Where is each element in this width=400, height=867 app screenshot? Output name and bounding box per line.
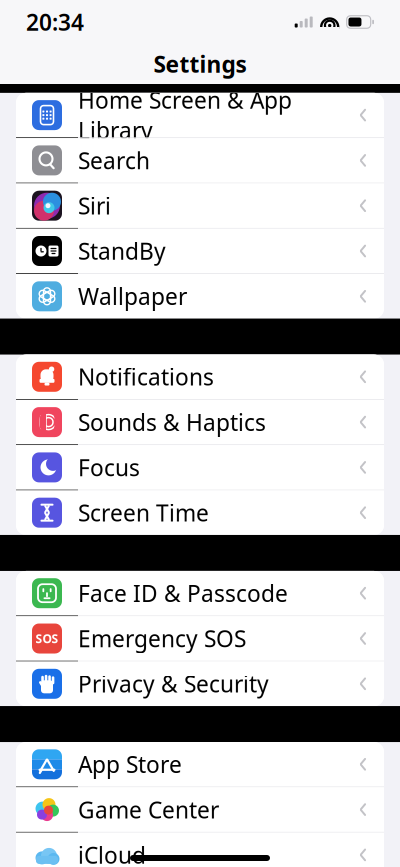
button[interactable]: Privacy & Security (16, 661, 384, 706)
button[interactable]: Face ID & Passcode (16, 571, 384, 616)
button[interactable]: Siri (16, 183, 384, 229)
button[interactable]: Notifications (16, 355, 384, 400)
button[interactable]: Focus (16, 445, 384, 490)
staticText: Settings (153, 49, 246, 79)
staticText: 20:34 (26, 7, 84, 37)
staticText: Focus (78, 452, 140, 482)
button[interactable]: iCloud (16, 833, 384, 867)
button[interactable]: Game Center (16, 787, 384, 833)
staticText: StandBy (78, 236, 166, 266)
button[interactable]: Screen Time (16, 490, 384, 535)
staticText: Screen Time (78, 498, 209, 528)
staticText: iCloud (78, 840, 146, 867)
staticText: Emergency SOS (78, 623, 246, 653)
button[interactable]: Search (16, 138, 384, 183)
button[interactable]: Sounds & Haptics (16, 400, 384, 445)
button[interactable]: SOS (16, 616, 384, 661)
staticText: Wallpaper (78, 281, 187, 311)
staticText: Home Screen & App Library (78, 85, 292, 145)
button[interactable]: StandBy (16, 229, 384, 274)
staticText: Sounds & Haptics (78, 407, 266, 437)
button[interactable]: Home Screen & App Library (16, 93, 384, 138)
staticText: Face ID & Passcode (78, 578, 288, 608)
button[interactable]: App Store (16, 742, 384, 787)
staticText: App Store (78, 749, 182, 779)
staticText: Privacy & Security (78, 669, 269, 699)
button[interactable]: Wallpaper (16, 274, 384, 319)
staticText: SOS (35, 630, 58, 646)
staticText: Notifications (78, 362, 214, 392)
staticText: Search (78, 145, 150, 175)
staticText: Siri (78, 191, 111, 221)
staticText: Game Center (78, 794, 219, 825)
